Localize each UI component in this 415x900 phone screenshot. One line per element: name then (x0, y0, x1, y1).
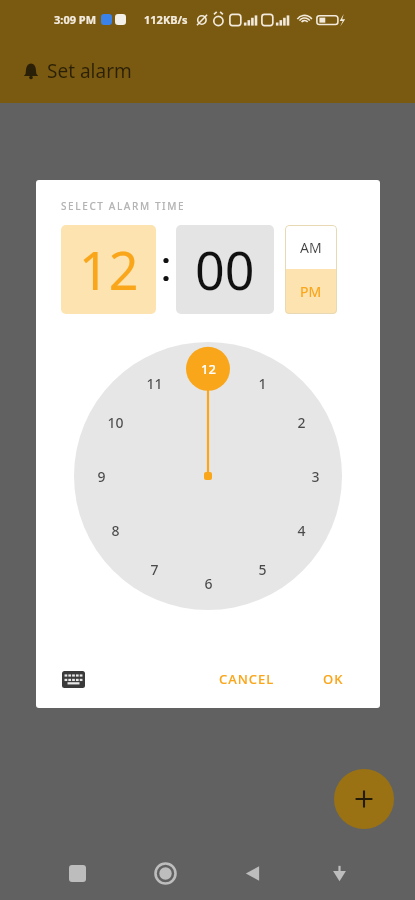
staticText: 12 (201, 360, 216, 378)
staticText: 112KB/s (144, 12, 188, 27)
button[interactable]: 00 (176, 225, 274, 314)
staticText: 10 (107, 413, 124, 432)
staticText: 11 (146, 374, 163, 393)
staticText: SELECT ALARM TIME (61, 199, 186, 213)
staticText: PM (300, 282, 322, 301)
button[interactable]: OK (311, 662, 356, 696)
button[interactable]: Back (230, 851, 274, 895)
staticText: 3 (311, 467, 320, 486)
button[interactable]: 12 (61, 225, 156, 314)
button[interactable]: Add alarm (334, 769, 394, 829)
staticText: 1 (258, 374, 267, 393)
staticText: 7 (150, 560, 159, 579)
staticText: 3:09 PM (54, 12, 97, 27)
staticText: 4 (297, 521, 306, 540)
staticText: 5 (258, 560, 267, 579)
button[interactable]: Switch to text input (56, 662, 90, 696)
button[interactable]: CANCEL (207, 662, 287, 696)
button[interactable]: AM (285, 225, 337, 269)
staticText: 9 (97, 467, 106, 486)
staticText: OK (323, 670, 344, 688)
staticText: Set alarm (47, 58, 132, 84)
staticText: CANCEL (219, 670, 275, 688)
button[interactable]: Hide keyboard (317, 851, 361, 895)
staticText: 2 (297, 413, 306, 432)
button[interactable]: PM (285, 269, 337, 314)
button[interactable]: Home (143, 851, 187, 895)
button[interactable]: Recents (55, 851, 99, 895)
staticText: 12 (79, 234, 139, 305)
staticText: 00 (195, 234, 255, 305)
staticText: 6 (204, 574, 213, 593)
staticText: AM (300, 238, 322, 257)
button[interactable]: 12 (74, 342, 342, 610)
staticText: 8 (111, 521, 120, 540)
